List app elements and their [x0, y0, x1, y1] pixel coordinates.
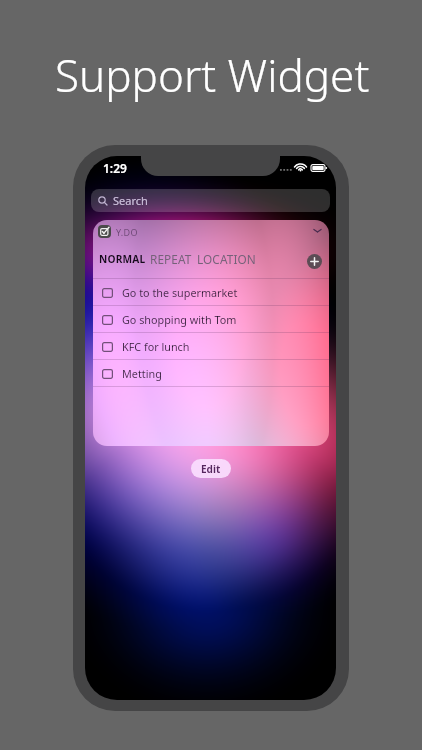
staticText: Support Widget — [55, 45, 370, 105]
staticText: Go to the supermarket — [122, 285, 238, 300]
staticText: Search — [113, 193, 148, 208]
staticText: Metting — [122, 366, 162, 381]
button[interactable]: KFC for lunch — [102, 333, 329, 360]
button[interactable]: Go to the supermarket — [102, 279, 329, 306]
staticText: KFC for lunch — [122, 339, 190, 354]
staticText: Go shopping with Tom — [122, 312, 237, 327]
button[interactable]: Go shopping with Tom — [102, 306, 329, 333]
button[interactable]: Edit — [191, 459, 231, 478]
staticText: Edit — [201, 462, 221, 476]
button[interactable]: NORMAL — [99, 252, 146, 266]
button[interactable]: REPEAT — [150, 251, 192, 267]
staticText: Y.DO — [116, 226, 138, 238]
staticText: LOCATION — [197, 251, 256, 267]
button[interactable]: Collapse widget — [311, 224, 324, 237]
button[interactable]: Metting — [102, 360, 329, 387]
staticText: REPEAT — [150, 251, 192, 267]
button[interactable]: Search — [91, 189, 330, 212]
button[interactable]: Add task — [307, 254, 322, 269]
button[interactable]: LOCATION — [197, 251, 256, 267]
staticText: NORMAL — [99, 252, 146, 266]
staticText: 1:29 — [103, 160, 127, 176]
